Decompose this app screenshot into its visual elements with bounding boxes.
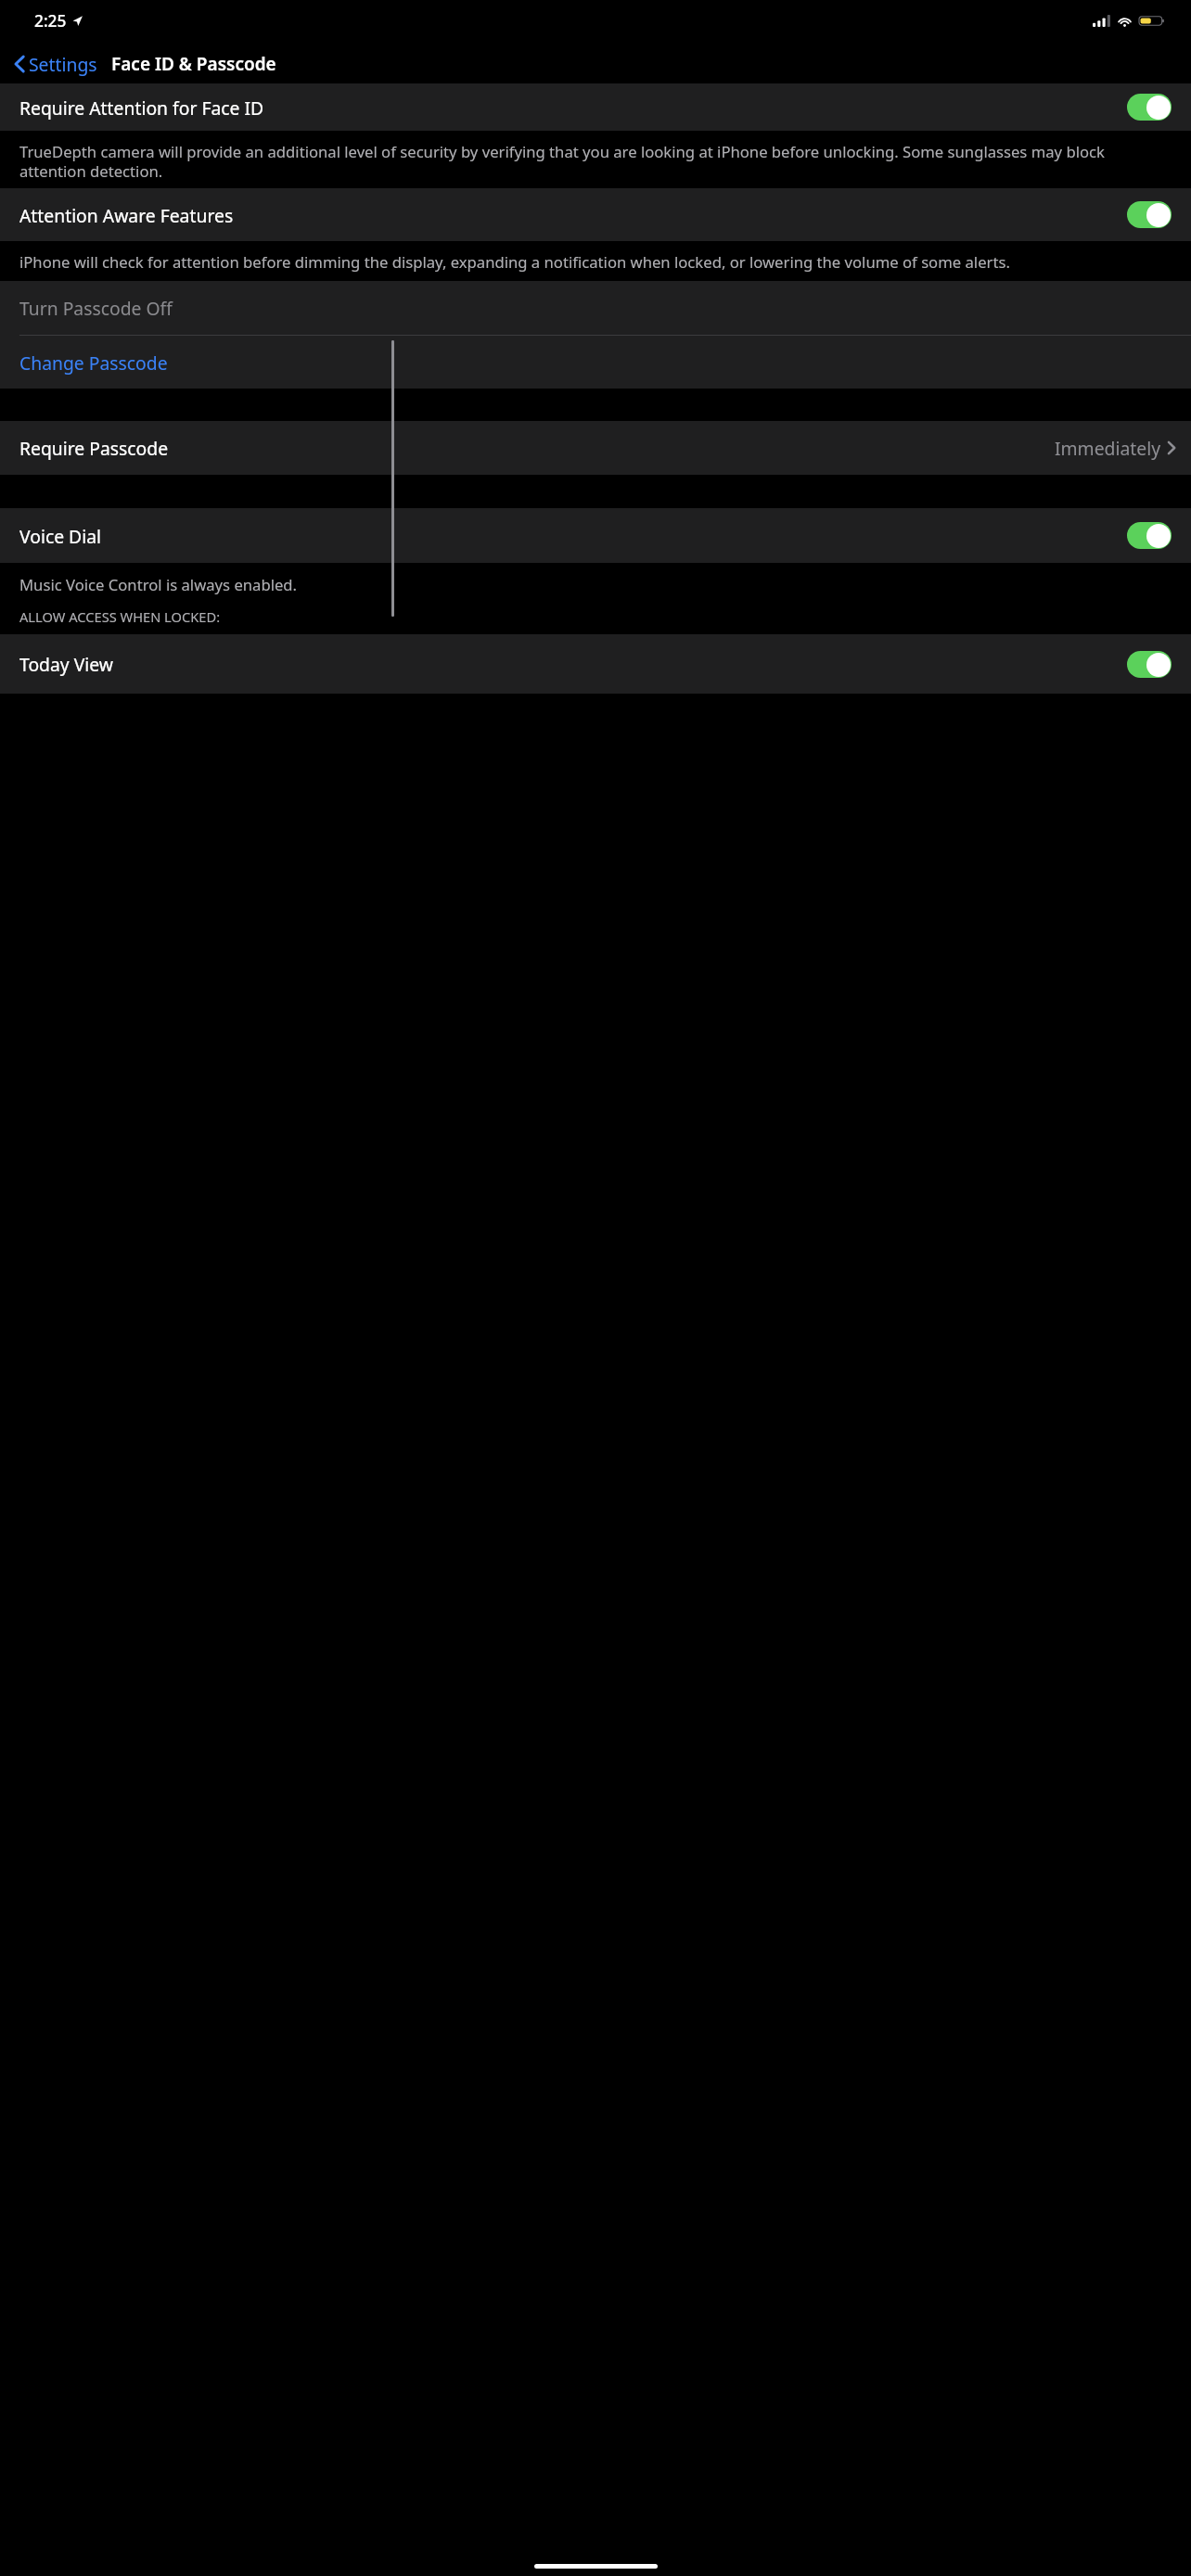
button[interactable]: Toggle on — [1127, 522, 1172, 549]
staticText: ALLOW ACCESS WHEN LOCKED: — [19, 607, 221, 626]
staticText: Change Passcode — [19, 351, 168, 375]
staticText: Face ID & Passcode — [111, 52, 276, 76]
button[interactable]: Toggle on — [1127, 94, 1172, 121]
staticText: Settings — [29, 52, 97, 76]
button[interactable]: Attention Aware Features — [0, 188, 1191, 241]
staticText: Turn Passcode Off — [19, 296, 173, 320]
staticText: iPhone will check for attention before d… — [19, 251, 1010, 273]
staticText: 2:25 — [34, 9, 67, 32]
staticText: TrueDepth camera will provide an additio… — [19, 141, 1168, 182]
staticText: Require Attention for Face ID — [19, 96, 1127, 120]
button[interactable]: Back — [12, 49, 100, 79]
button[interactable]: Require Attention for Face ID — [0, 83, 1191, 131]
button[interactable]: Toggle on — [1127, 201, 1172, 228]
button[interactable]: Turn Passcode Off — [0, 281, 1191, 335]
button[interactable]: Today View — [0, 634, 1191, 694]
staticText: Music Voice Control is always enabled. — [19, 574, 298, 595]
other: Back — [15, 56, 24, 72]
staticText: Attention Aware Features — [19, 203, 1127, 227]
staticText: Require Passcode — [19, 436, 1055, 460]
staticText: Voice Dial — [19, 524, 1127, 548]
button[interactable]: Toggle on — [1127, 651, 1172, 678]
button[interactable]: Require Passcode — [0, 421, 1191, 475]
button[interactable]: Change Passcode — [0, 336, 1191, 389]
staticText: Today View — [19, 652, 1127, 676]
button[interactable]: Voice Dial — [0, 508, 1191, 563]
staticText: Immediately — [1055, 436, 1161, 460]
